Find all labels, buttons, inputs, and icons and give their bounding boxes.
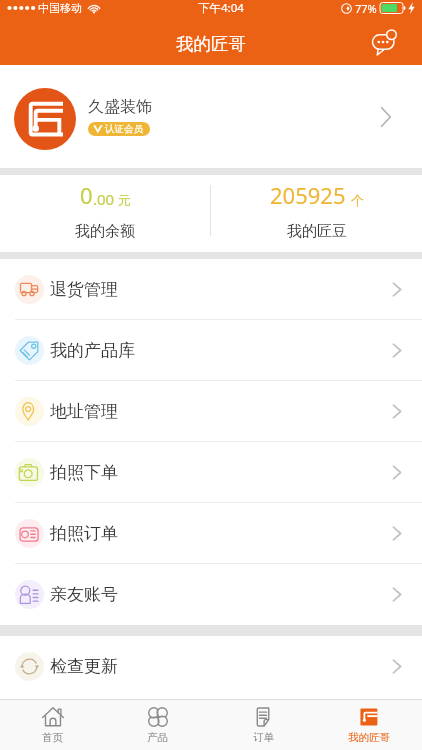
staticText: 下午4:04	[198, 0, 244, 16]
staticText: .00	[93, 189, 115, 209]
staticText: 我的产品库	[50, 340, 135, 361]
staticText: 我的匠豆	[287, 222, 347, 241]
button[interactable]: 久盛装饰	[0, 65, 422, 168]
button[interactable]: 产品	[105, 700, 210, 750]
staticText: 地址管理	[50, 401, 118, 422]
staticText: 退货管理	[50, 279, 118, 300]
staticText: 我的匠哥	[348, 731, 390, 744]
staticText: 订单	[253, 731, 274, 744]
button[interactable]: 订单	[210, 700, 316, 750]
button[interactable]: 检查更新	[0, 636, 422, 697]
staticText: 0	[80, 180, 93, 210]
button[interactable]: 首页	[0, 700, 105, 750]
staticText: 元	[118, 192, 131, 208]
staticText: 首页	[42, 731, 63, 744]
button[interactable]: 拍照下单	[0, 442, 422, 503]
button[interactable]: 我的匠哥	[316, 700, 422, 750]
button[interactable]: 我的产品库	[0, 320, 422, 381]
button[interactable]: 205925	[211, 180, 422, 241]
staticText: 拍照订单	[50, 523, 118, 544]
staticText: 77%	[355, 1, 377, 16]
staticText: 拍照下单	[50, 462, 118, 483]
staticText: 个	[351, 192, 364, 208]
button[interactable]: Messages	[365, 24, 403, 62]
staticText: 认证会员	[105, 123, 143, 135]
button[interactable]: 退货管理	[0, 259, 422, 320]
button[interactable]: 拍照订单	[0, 503, 422, 564]
staticText: 中国移动	[38, 1, 82, 15]
staticText: 检查更新	[50, 656, 118, 677]
button[interactable]: 0	[0, 180, 210, 241]
staticText: 亲友账号	[50, 584, 118, 605]
button[interactable]: 亲友账号	[0, 564, 422, 625]
staticText: 我的余额	[75, 222, 135, 241]
button[interactable]: 地址管理	[0, 381, 422, 442]
staticText: 产品	[147, 731, 168, 744]
staticText: 我的匠哥	[176, 33, 246, 55]
staticText: 205925	[270, 180, 346, 210]
staticText: 久盛装饰	[88, 97, 152, 117]
